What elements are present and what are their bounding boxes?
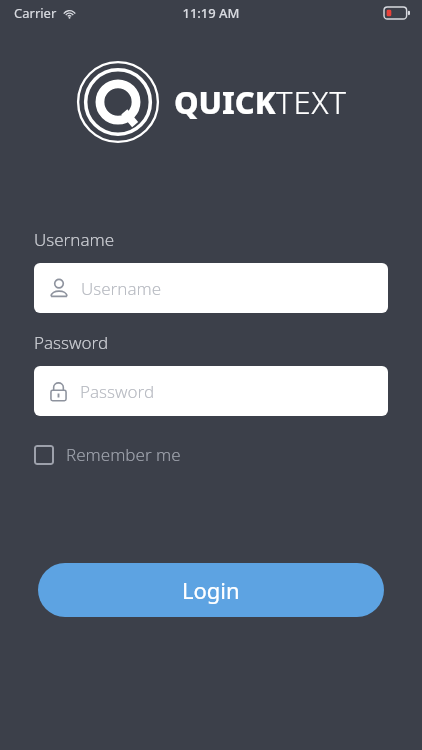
- button[interactable]: Password: [34, 366, 388, 416]
- staticText: Remember me: [66, 443, 181, 466]
- other: Password: [48, 381, 69, 402]
- staticText: Carrier: [14, 4, 57, 22]
- staticText: QUICK: [174, 81, 276, 123]
- button[interactable]: Username: [34, 263, 388, 313]
- other: Username: [48, 277, 70, 299]
- staticText: Username: [81, 277, 162, 300]
- staticText: 11:19 AM: [182, 4, 240, 22]
- button[interactable]: Login: [38, 563, 384, 617]
- staticText: TEXT: [276, 81, 347, 123]
- staticText: Login: [182, 575, 240, 605]
- button[interactable]: Remember me: [34, 439, 181, 470]
- staticText: Username: [34, 228, 115, 251]
- staticText: Password: [34, 331, 109, 354]
- staticText: Password: [80, 380, 155, 403]
